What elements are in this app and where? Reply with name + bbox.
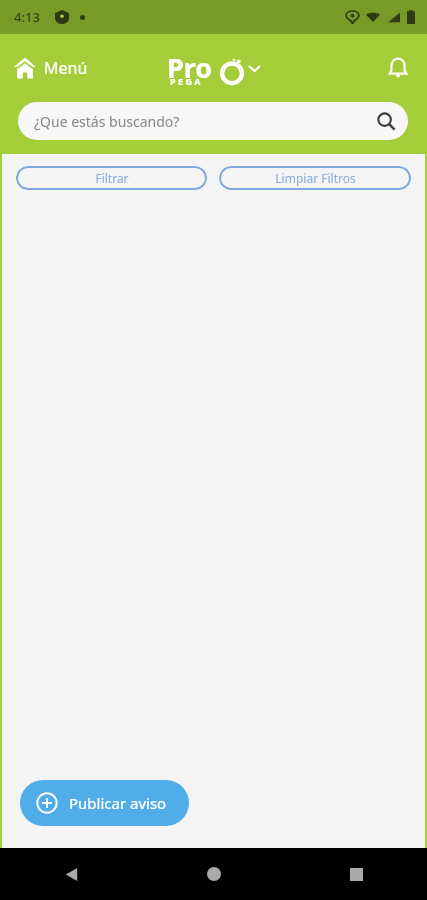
staticText: PEGA: [170, 75, 203, 87]
staticText: Pro: [167, 49, 213, 86]
button[interactable]: ¿Que estás buscando?: [18, 102, 408, 140]
button[interactable]: Recientes: [285, 848, 427, 900]
staticText: Publicar aviso: [69, 793, 167, 813]
staticText: ¿Que estás buscando?: [34, 112, 180, 131]
button[interactable]: Atrás: [0, 848, 143, 900]
button[interactable]: Notificaciones: [379, 49, 417, 87]
staticText: 4:13: [14, 8, 40, 26]
button[interactable]: Inicio: [143, 848, 285, 900]
staticText: Filtrar: [95, 170, 129, 186]
staticText: Menú: [44, 57, 88, 79]
button[interactable]: Publicar aviso: [20, 780, 189, 826]
staticText: Limpiar Filtros: [275, 170, 356, 186]
button[interactable]: Pro: [161, 43, 266, 93]
button[interactable]: Limpiar Filtros: [219, 166, 411, 190]
button[interactable]: Menú: [0, 49, 98, 87]
button[interactable]: Filtrar: [16, 166, 207, 190]
